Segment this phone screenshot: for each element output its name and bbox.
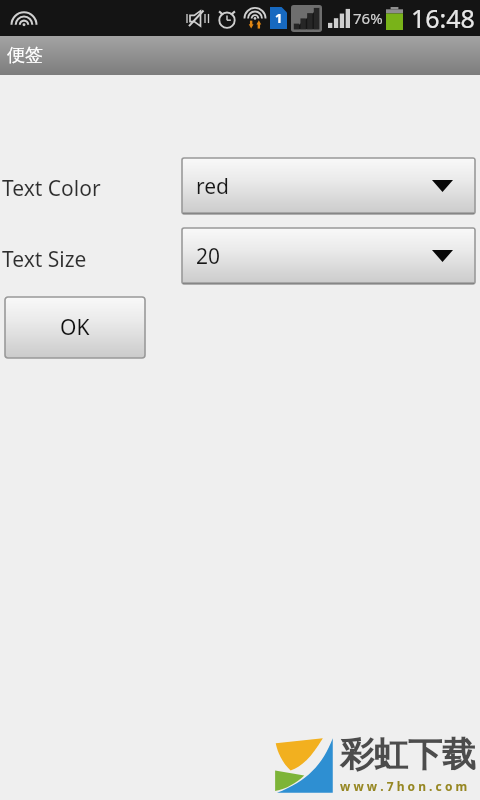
staticText: 便签: [7, 44, 43, 67]
staticText: 1: [275, 9, 283, 27]
staticText: 16:48: [411, 1, 475, 35]
button[interactable]: red: [182, 158, 475, 214]
staticText: 彩虹下载: [340, 733, 476, 776]
staticText: Text Size: [2, 245, 87, 274]
staticText: 76%: [353, 8, 383, 28]
staticText: red: [196, 172, 230, 201]
staticText: Text Color: [2, 174, 101, 203]
button[interactable]: 20: [182, 228, 475, 284]
button[interactable]: OK: [5, 297, 145, 358]
staticText: w w w . 7 h o n . c o m: [340, 778, 468, 794]
staticText: OK: [60, 313, 90, 342]
staticText: 20: [196, 242, 221, 271]
